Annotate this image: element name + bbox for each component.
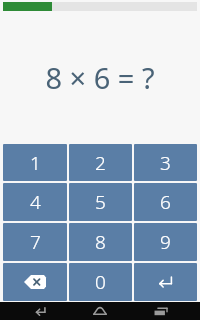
button[interactable]: Back	[22, 302, 60, 320]
button[interactable]: 4	[3, 183, 67, 221]
staticText: 7	[30, 229, 41, 255]
staticText: 8	[95, 229, 106, 255]
button[interactable]: 0	[69, 263, 132, 301]
staticText: 9	[160, 229, 171, 255]
staticText: 6	[160, 189, 171, 215]
staticText: 1	[30, 150, 41, 176]
button[interactable]: 8	[69, 223, 132, 261]
button[interactable]: 3	[134, 144, 197, 181]
button[interactable]: 7	[3, 223, 67, 261]
staticText: 2	[95, 150, 106, 176]
button[interactable]: Home	[81, 302, 119, 320]
staticText: 3	[160, 150, 171, 176]
button[interactable]: Enter	[134, 263, 197, 301]
staticText: 5	[95, 189, 106, 215]
staticText: 4	[30, 189, 41, 215]
staticText: 8 × 6 = ?	[45, 58, 155, 97]
button[interactable]: 9	[134, 223, 197, 261]
button[interactable]: Recent apps	[141, 302, 179, 320]
staticText: 0	[95, 269, 106, 295]
button[interactable]: Backspace	[3, 263, 67, 301]
button[interactable]: 5	[69, 183, 132, 221]
button[interactable]: 1	[3, 144, 67, 181]
button[interactable]: 6	[134, 183, 197, 221]
button[interactable]: 2	[69, 144, 132, 181]
